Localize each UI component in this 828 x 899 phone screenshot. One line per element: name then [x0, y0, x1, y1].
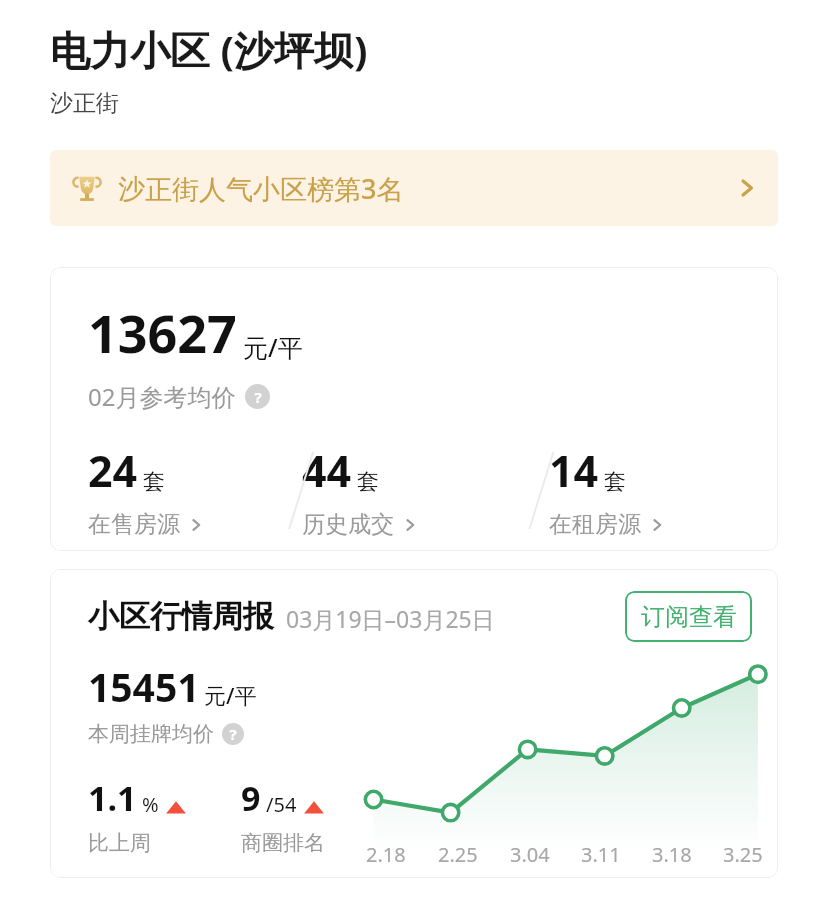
button[interactable]: 44: [302, 441, 535, 539]
staticText: 3.25: [723, 841, 763, 868]
staticText: 历史成交: [302, 510, 394, 539]
staticText: 2.25: [438, 841, 478, 868]
other: Help: [222, 723, 244, 745]
other: Help: [245, 384, 270, 409]
staticText: 沙正街人气小区榜第3名: [118, 170, 404, 207]
staticText: 3.11: [581, 841, 621, 868]
staticText: 商圈排名: [241, 830, 325, 856]
staticText: 02月参考均价: [88, 380, 236, 413]
button[interactable]: 24: [88, 441, 292, 539]
button[interactable]: 14: [549, 441, 778, 539]
staticText: 套: [604, 468, 626, 496]
staticText: 套: [357, 468, 379, 496]
staticText: 电力小区 (沙坪坝): [50, 22, 368, 77]
staticText: 元/平: [243, 330, 303, 364]
staticText: 3.18: [652, 841, 692, 868]
staticText: 在租房源: [549, 510, 641, 539]
staticText: 在售房源: [88, 510, 180, 539]
staticText: 14: [549, 441, 599, 500]
other: Trophy: [70, 171, 104, 205]
staticText: 44: [302, 441, 352, 500]
staticText: 沙正街: [50, 89, 119, 118]
staticText: ?: [254, 387, 262, 407]
staticText: 本周挂牌均价: [88, 721, 214, 747]
staticText: 套: [143, 468, 165, 496]
staticText: 小区行情周报: [88, 597, 274, 636]
staticText: 24: [88, 441, 138, 500]
button[interactable]: Trophy: [50, 150, 778, 226]
staticText: 比上周: [88, 830, 151, 856]
staticText: 元/平: [204, 680, 257, 710]
staticText: 15451: [88, 660, 200, 713]
staticText: %: [142, 791, 159, 818]
staticText: 13627: [88, 297, 237, 368]
staticText: /54: [266, 791, 297, 818]
staticText: ?: [229, 724, 237, 744]
staticText: 3.04: [510, 841, 550, 868]
staticText: 9: [241, 775, 261, 821]
staticText: 2.18: [366, 841, 406, 868]
staticText: 1.1: [88, 775, 137, 821]
staticText: 03月19日–03月25日: [286, 603, 495, 634]
button[interactable]: 订阅查看: [625, 591, 752, 642]
staticText: 订阅查看: [641, 602, 737, 632]
